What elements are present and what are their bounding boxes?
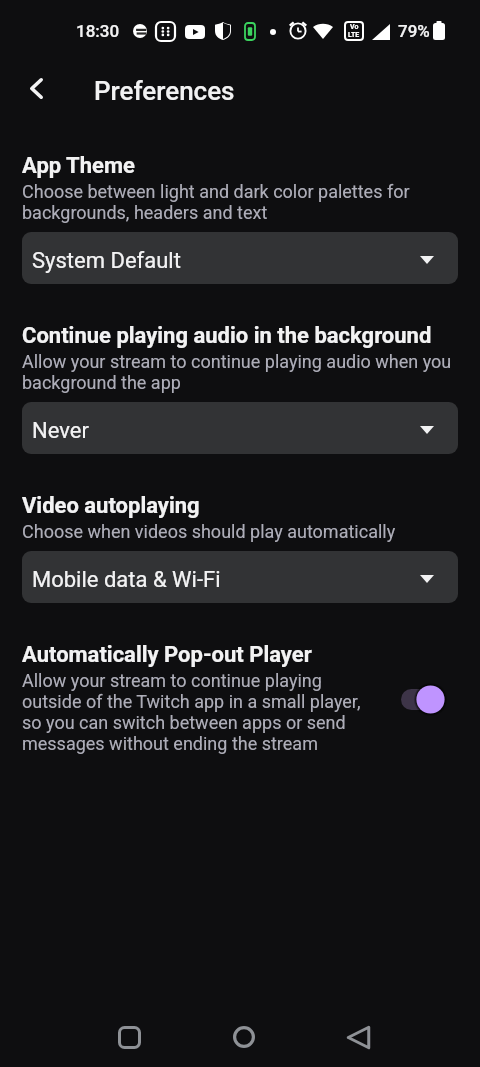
staticText: 79% (398, 21, 430, 41)
button[interactable]: Recents (103, 1011, 155, 1063)
button[interactable]: Home (218, 1011, 270, 1063)
staticText: LTE (348, 31, 360, 39)
staticText: Vo (350, 23, 359, 31)
staticText: Allow your stream to continue playing au… (22, 351, 458, 393)
staticText: App Theme (22, 152, 135, 179)
button[interactable]: Automatically Pop-out Player (395, 680, 455, 724)
button[interactable]: Mobile data & Wi-Fi (22, 551, 458, 603)
staticText: System Default (32, 248, 181, 274)
button[interactable]: System Default (22, 232, 458, 284)
button[interactable]: Back (332, 1011, 384, 1063)
staticText: Allow your stream to continue playing ou… (22, 670, 380, 754)
staticText: Continue playing audio in the background (22, 322, 432, 349)
staticText: Automatically Pop-out Player (22, 641, 312, 668)
staticText: Never (32, 418, 89, 444)
staticText: Mobile data & Wi-Fi (32, 567, 221, 593)
staticText: Preferences (94, 76, 235, 106)
staticText: 18:30 (76, 21, 120, 41)
button[interactable]: Back (12, 64, 60, 112)
staticText: Choose between light and dark color pale… (22, 181, 458, 223)
button[interactable]: Never (22, 402, 458, 454)
staticText: Choose when videos should play automatic… (22, 521, 396, 542)
staticText: Video autoplaying (22, 492, 200, 519)
